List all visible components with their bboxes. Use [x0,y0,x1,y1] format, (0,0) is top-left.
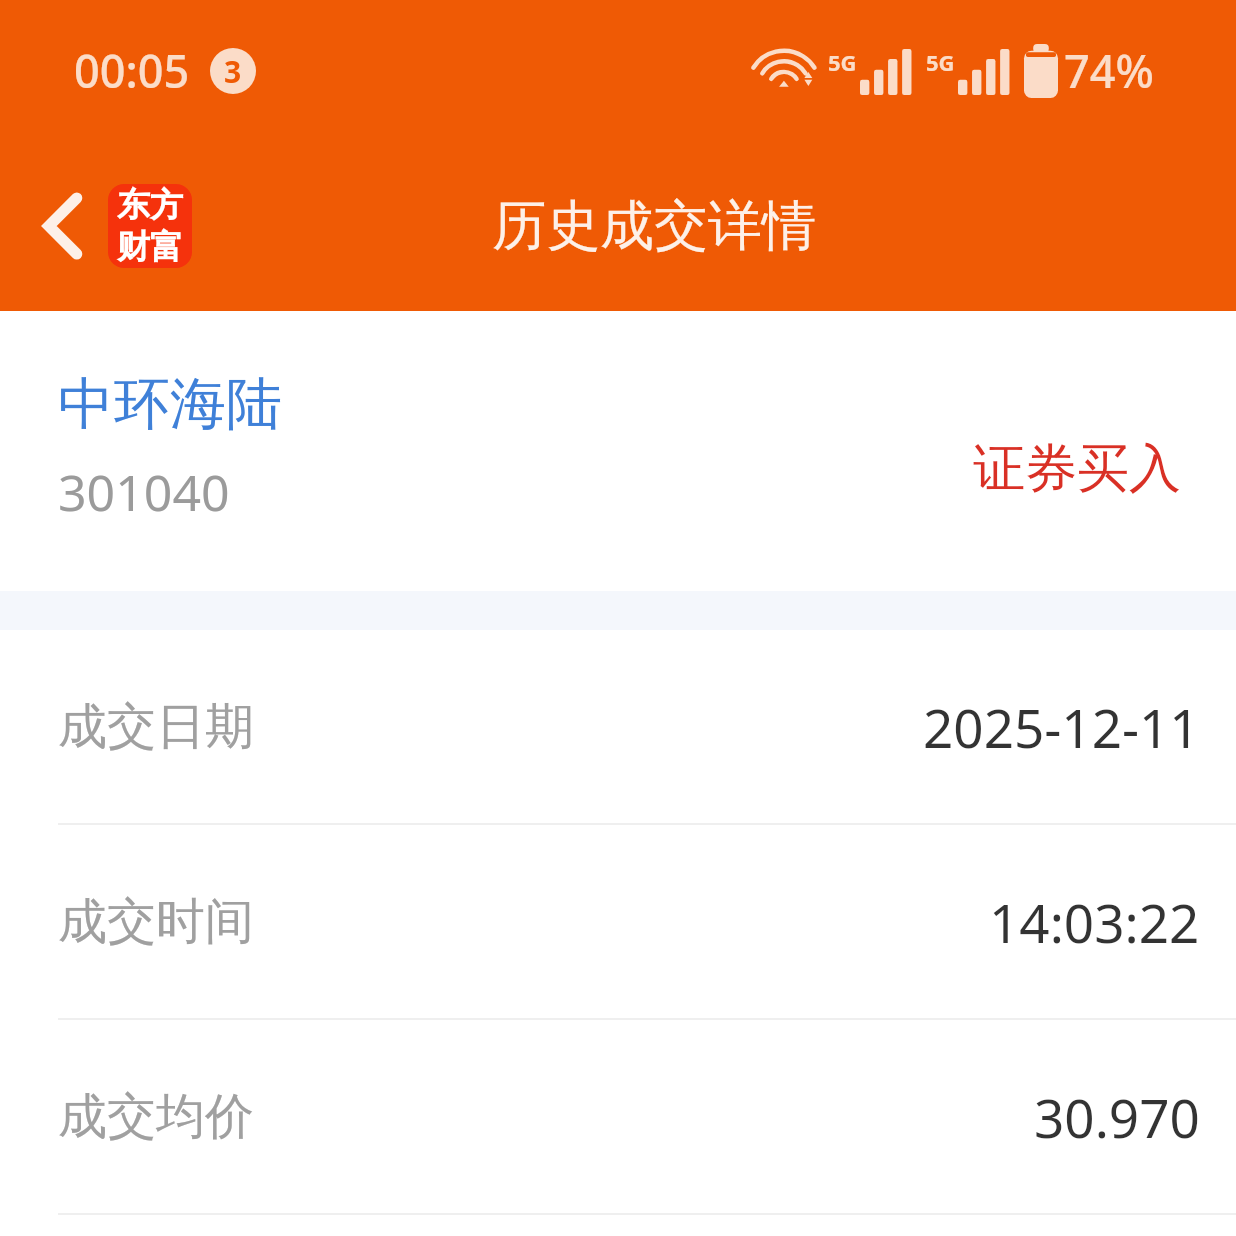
staticText: 30.970 [1034,1081,1200,1153]
staticText: 成交时间 [58,891,254,953]
button[interactable]: 成交均价 [0,1020,1236,1213]
staticText: 3 [224,51,242,92]
button[interactable]: Back [20,182,108,270]
button[interactable]: 成交日期 [0,630,1236,823]
staticText: 财富 [117,226,183,268]
staticText: 成交均价 [58,1086,254,1148]
button[interactable]: 成交时间 [0,825,1236,1018]
staticText: 东方 [117,184,183,226]
staticText: 14:03:22 [989,886,1200,958]
staticText: 5G [926,47,955,77]
staticText: 成交日期 [58,696,254,758]
staticText: 2025-12-11 [923,691,1200,763]
staticText: 证券买入 [973,436,1181,502]
staticText: 5G [828,47,857,77]
staticText: 00:05 [74,40,190,101]
button[interactable]: 东方财富 [108,184,192,268]
staticText: 中环海陆 [58,369,282,440]
staticText: 301040 [58,458,230,526]
button[interactable]: 中环海陆 [0,311,1236,591]
staticText: 历史成交详情 [492,192,816,260]
staticText: 74% [1064,40,1154,101]
